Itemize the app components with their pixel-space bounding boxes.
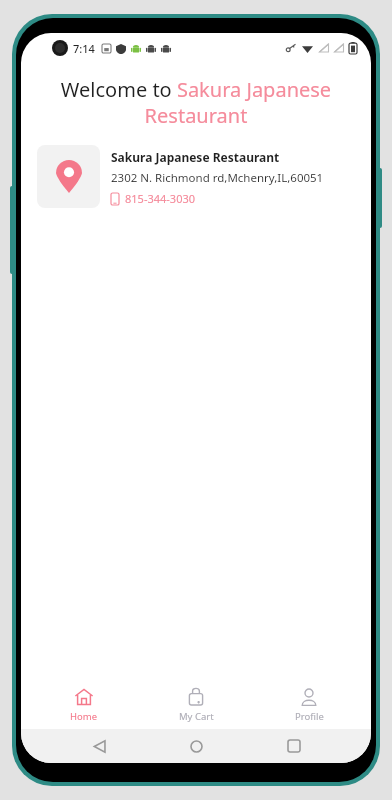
staticText: 2302 N. Richmond rd,Mchenry,IL,60051: [111, 170, 324, 186]
staticText: Welcome to Sakura Japanese Restaurant: [31, 76, 361, 129]
staticText: My Cart: [179, 710, 214, 723]
button[interactable]: My Cart: [146, 687, 246, 723]
staticText: Sakura Japanese Restaurant: [111, 149, 280, 165]
staticText: 7:14: [73, 41, 95, 56]
button[interactable]: Sakura Japanese Restaurant: [21, 145, 371, 221]
button[interactable]: Back: [79, 729, 119, 763]
button[interactable]: Home: [176, 729, 216, 763]
staticText: Home: [70, 710, 98, 723]
button[interactable]: Recent apps: [274, 729, 314, 763]
staticText: 815-344-3030: [125, 191, 196, 206]
button[interactable]: Profile: [259, 687, 359, 723]
staticText: Profile: [295, 710, 324, 723]
button[interactable]: Home: [34, 687, 134, 723]
